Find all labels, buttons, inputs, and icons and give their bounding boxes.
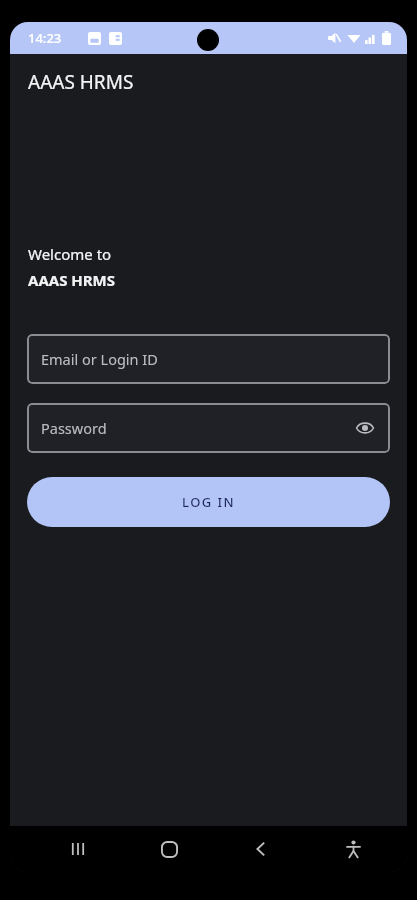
staticText: LOG IN xyxy=(182,493,235,511)
button[interactable]: Back xyxy=(215,826,307,872)
button[interactable]: LOG IN xyxy=(27,477,390,527)
button[interactable]: Email or Login ID xyxy=(27,334,390,384)
button[interactable]: Password xyxy=(27,403,390,453)
staticText: Email or Login ID xyxy=(41,349,158,369)
staticText: Welcome to xyxy=(28,244,112,264)
button[interactable]: Show password xyxy=(350,413,380,443)
staticText: 14:23 xyxy=(28,29,62,47)
button[interactable]: Home xyxy=(123,826,215,872)
button[interactable]: Accessibility xyxy=(307,826,399,872)
staticText: AAAS HRMS xyxy=(28,69,134,95)
button[interactable]: Recent apps xyxy=(32,826,123,872)
staticText: Password xyxy=(41,418,107,438)
staticText: AAAS HRMS xyxy=(28,270,116,290)
